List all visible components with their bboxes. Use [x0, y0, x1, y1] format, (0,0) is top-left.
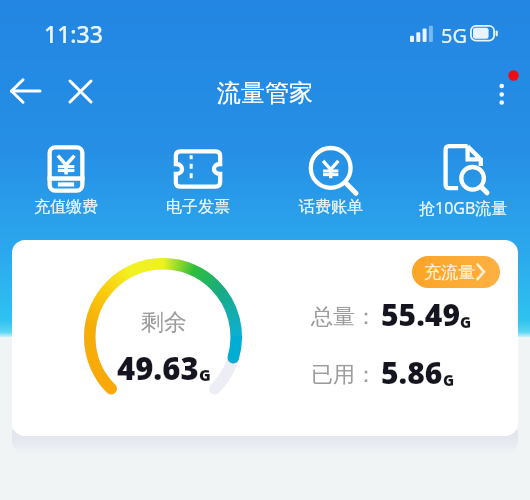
button[interactable]: 电子发票 [132, 139, 264, 217]
button[interactable]: 充流量 [412, 256, 500, 288]
button[interactable]: Back [4, 70, 46, 112]
button[interactable]: Close [59, 70, 101, 112]
staticText: 充流量 [424, 262, 475, 283]
staticText: G [199, 364, 211, 386]
staticText: 55.49 [381, 294, 460, 335]
staticText: 电子发票 [166, 197, 230, 217]
button[interactable]: More options [482, 66, 522, 118]
button[interactable]: 话费账单 [264, 139, 397, 217]
staticText: 已用： [311, 361, 377, 389]
staticText: 话费账单 [299, 197, 363, 217]
staticText: 剩余 [141, 308, 187, 337]
staticText: G [443, 370, 455, 390]
staticText: 充值缴费 [34, 197, 98, 217]
button[interactable]: 抢10GB流量 [397, 139, 530, 219]
staticText: 11:33 [44, 18, 103, 49]
staticText: G [460, 312, 472, 332]
staticText: 5.86 [381, 352, 443, 393]
staticText: 总量： [311, 303, 377, 331]
staticText: 抢10GB流量 [419, 197, 508, 219]
staticText: 流量管家 [217, 78, 313, 108]
staticText: 49.63 [117, 347, 199, 389]
button[interactable]: 充值缴费 [0, 139, 132, 217]
staticText: 5G [441, 22, 467, 49]
